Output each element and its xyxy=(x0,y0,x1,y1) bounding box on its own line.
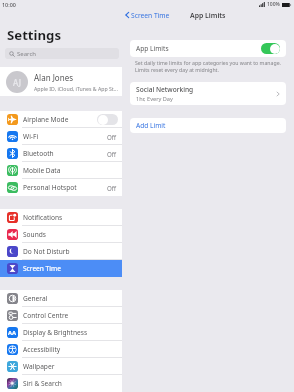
staticText: Off xyxy=(107,133,117,141)
staticText: Off xyxy=(107,184,117,192)
staticText: 1hr, Every Day xyxy=(136,95,173,103)
staticText: App Limits xyxy=(190,11,226,20)
staticText: Sounds xyxy=(23,230,46,239)
staticText: Alan Jones xyxy=(34,72,73,83)
staticText: Limits reset every day at midnight. xyxy=(135,66,219,73)
button[interactable]: Add Limit xyxy=(130,118,286,133)
button[interactable]: AJ xyxy=(0,67,122,96)
button[interactable]: Sounds xyxy=(0,226,122,243)
staticText: Display & Brightness xyxy=(23,328,88,337)
staticText: Add Limit xyxy=(136,121,166,130)
staticText: 10:00 xyxy=(2,1,16,8)
staticText: Control Centre xyxy=(23,311,69,320)
staticText: AA xyxy=(8,329,17,337)
button[interactable]: Accessibility xyxy=(0,341,122,358)
staticText: Personal Hotspot xyxy=(23,183,77,192)
button[interactable]: Notifications xyxy=(0,209,122,226)
staticText: AJ xyxy=(13,77,21,88)
staticText: Set daily time limits for app categories… xyxy=(135,59,281,66)
staticText: Wallpaper xyxy=(23,362,55,371)
staticText: Apple ID, iCloud, iTunes & App St... xyxy=(34,85,118,92)
button[interactable]: Wallpaper xyxy=(0,358,122,375)
staticText: Mobile Data xyxy=(23,166,61,175)
button[interactable]: App Limits toggle xyxy=(261,43,280,54)
button[interactable]: App Limits xyxy=(130,40,286,57)
staticText: Airplane Mode xyxy=(23,115,69,124)
button[interactable]: AA xyxy=(0,324,122,341)
staticText: App Limits xyxy=(136,44,169,53)
button[interactable]: Screen Time xyxy=(124,10,170,20)
staticText: Do Not Disturb xyxy=(23,247,70,256)
staticText: Settings xyxy=(7,26,62,44)
button[interactable]: Mobile Data xyxy=(0,162,122,179)
button[interactable]: Siri & Search xyxy=(0,375,122,392)
staticText: Screen Time xyxy=(131,11,170,20)
button[interactable]: Personal Hotspot xyxy=(0,179,122,196)
staticText: Accessibility xyxy=(23,345,61,354)
staticText: Search xyxy=(17,50,36,58)
staticText: 100% xyxy=(267,1,280,8)
staticText: Screen Time xyxy=(23,264,61,273)
staticText: Siri & Search xyxy=(23,379,62,388)
staticText: Wi-Fi xyxy=(23,132,39,141)
button[interactable]: Screen Time xyxy=(0,260,122,277)
button[interactable]: Airplane Mode toggle xyxy=(97,114,118,125)
button[interactable]: Bluetooth xyxy=(0,145,122,162)
button[interactable]: Control Centre xyxy=(0,307,122,324)
staticText: Notifications xyxy=(23,213,63,222)
staticText: General xyxy=(23,294,48,303)
button[interactable]: Social Networking xyxy=(130,82,286,105)
button[interactable]: Do Not Disturb xyxy=(0,243,122,260)
button[interactable]: Wi-Fi xyxy=(0,128,122,145)
staticText: Off xyxy=(107,150,117,158)
button[interactable]: Airplane Mode xyxy=(0,111,122,128)
staticText: Social Networking xyxy=(136,85,194,94)
button[interactable]: General xyxy=(0,290,122,307)
staticText: Bluetooth xyxy=(23,149,54,158)
button[interactable]: Search xyxy=(5,48,119,59)
